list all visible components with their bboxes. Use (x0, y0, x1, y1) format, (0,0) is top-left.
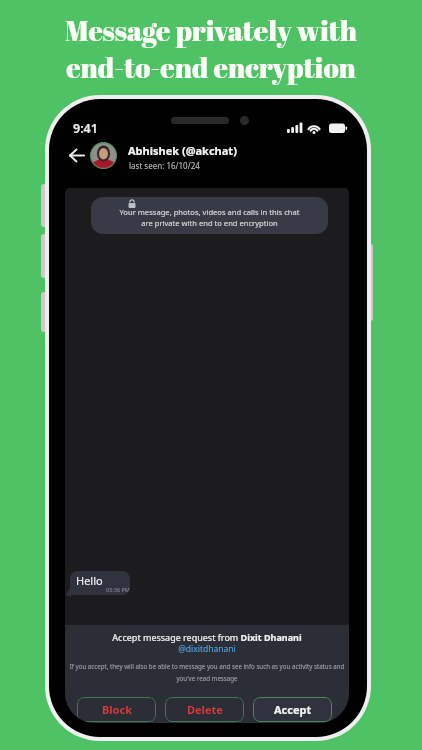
button[interactable]: Abhishek (@akchat) (128, 143, 237, 169)
staticText: are private with end to end encryption (91, 218, 328, 228)
button[interactable]: Accept (253, 697, 332, 722)
button[interactable]: Block (77, 697, 156, 722)
staticText: end-to-end encryption (0, 48, 422, 86)
staticText: 9:41 (73, 120, 98, 137)
staticText: you've read message (65, 674, 349, 682)
staticText: last seen: 16/10/24 (129, 160, 200, 171)
button[interactable] (68, 148, 85, 163)
staticText: 05:36 PM (106, 586, 130, 593)
staticText: Delete (187, 702, 223, 717)
button[interactable]: Delete (165, 697, 244, 722)
staticText: Your message, photos, videos and calls i… (91, 207, 328, 217)
staticText: Block (102, 702, 132, 717)
staticText: Abhishek (@akchat) (128, 143, 237, 158)
staticText: If you accept, they will also be able to… (65, 662, 349, 670)
staticText: Hello (76, 573, 103, 588)
button[interactable]: @dixitdhanani (65, 643, 349, 655)
staticText: Accept message request from Dixit Dhanan… (65, 631, 349, 643)
staticText: Message privately with (0, 11, 422, 49)
staticText: Accept (274, 702, 312, 717)
